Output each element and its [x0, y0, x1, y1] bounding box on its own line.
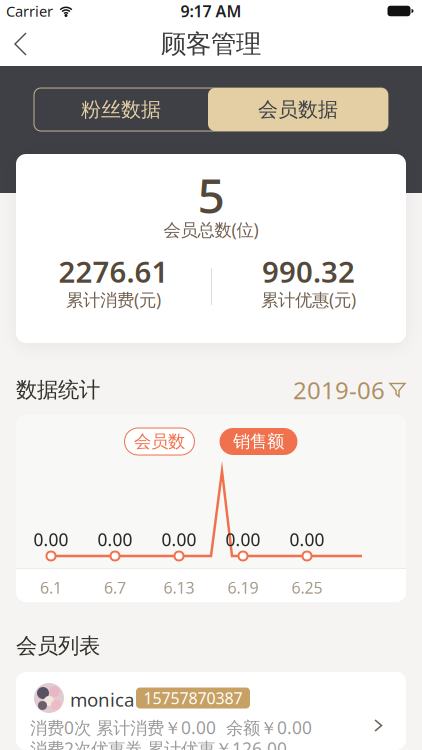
staticText: 0.00 — [33, 528, 68, 551]
staticText: 990.32 — [262, 252, 355, 291]
staticText: 会员数据 — [258, 97, 338, 122]
staticText: 会员总数(位) — [163, 218, 258, 241]
staticText: 消费0次 累计消费￥0.00 余额￥0.00 — [30, 716, 312, 739]
staticText: 0.00 — [161, 528, 196, 551]
staticText: 2019-06 — [293, 374, 385, 406]
staticText: 0.00 — [289, 528, 324, 551]
staticText: 9:17 AM — [180, 0, 241, 22]
button[interactable]: 会员数 — [124, 428, 194, 455]
staticText: 会员数 — [134, 431, 185, 452]
staticText: 累计优惠(元) — [261, 288, 356, 311]
button[interactable]: monica — [16, 672, 406, 750]
staticText: 数据统计 — [16, 377, 100, 403]
button[interactable]: 销售额 — [219, 428, 297, 455]
button[interactable]: Back — [0, 22, 44, 66]
staticText: 6.25 — [291, 577, 322, 598]
staticText: 累计消费(元) — [66, 288, 161, 311]
staticText: 2276.61 — [58, 252, 168, 291]
staticText: 6.7 — [104, 577, 126, 598]
staticText: 粉丝数据 — [81, 97, 161, 122]
button[interactable]: Filter by month — [293, 374, 406, 406]
staticText: 15757870387 — [143, 687, 242, 709]
staticText: 消费2次优惠券 累计优惠￥126.00 — [30, 737, 287, 750]
staticText: 会员列表 — [16, 633, 100, 659]
staticText: monica — [70, 687, 134, 712]
staticText: 顾客管理 — [161, 28, 261, 59]
staticText: 5 — [197, 163, 224, 227]
staticText: 6.19 — [227, 577, 258, 598]
staticText: 0.00 — [97, 528, 132, 551]
staticText: 6.1 — [40, 577, 62, 598]
staticText: Carrier — [6, 1, 53, 21]
staticText: 0.00 — [225, 528, 260, 551]
button[interactable]: 会员数据 — [208, 88, 388, 131]
button[interactable]: 粉丝数据 — [34, 88, 208, 131]
staticText: 销售额 — [233, 431, 284, 452]
staticText: 6.13 — [163, 577, 194, 598]
